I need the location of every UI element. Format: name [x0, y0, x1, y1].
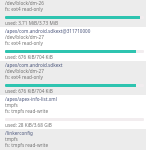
- staticText: used: 28 KiB/3.68 GiB: [5, 122, 52, 128]
- staticText: /apex/apex-info-list.xml: [5, 96, 57, 102]
- staticText: used: 3.71 MiB/3.73 MiB: [5, 20, 58, 26]
- button[interactable]: /apex/apex-info-list.xml: [0, 95, 146, 129]
- staticText: /apex/com.android.sdkext@311710000: [5, 28, 91, 34]
- staticText: /dev/block/dm-27: [5, 34, 44, 40]
- staticText: /apex/com.android.sdkext: [5, 62, 63, 68]
- staticText: used: 676 KiB/704 KiB: [5, 88, 53, 94]
- staticText: fs: ext4 read-only: [5, 40, 43, 46]
- button[interactable]: /apex/com.android.sdkext@311710000: [0, 0, 146, 27]
- staticText: tmpfs: [5, 102, 18, 108]
- staticText: /dev/block/dm-27: [5, 68, 44, 74]
- staticText: /dev/block/dm-26: [5, 0, 44, 6]
- button[interactable]: /apex/com.android.sdkext@311710000: [0, 27, 146, 61]
- staticText: fs: tmpfs read-write: [5, 142, 49, 148]
- staticText: fs: ext4 read-only: [5, 6, 43, 12]
- staticText: /linkerconfig: [5, 130, 33, 136]
- staticText: tmpfs: [5, 136, 18, 142]
- staticText: fs: tmpfs read-write: [5, 108, 49, 114]
- staticText: used: 676 KiB/704 KiB: [5, 54, 53, 60]
- button[interactable]: /linkerconfig: [0, 129, 146, 150]
- staticText: fs: ext4 read-only: [5, 74, 43, 80]
- button[interactable]: /apex/com.android.sdkext: [0, 61, 146, 95]
